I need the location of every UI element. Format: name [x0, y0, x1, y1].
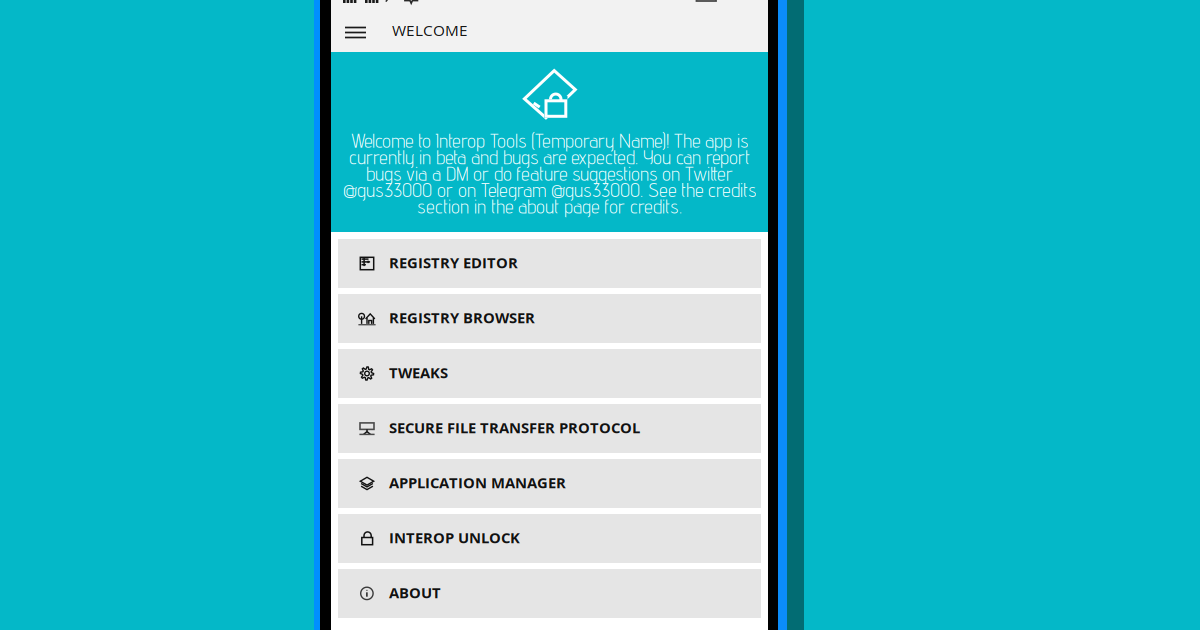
button[interactable]: ABOUT [338, 569, 761, 618]
staticText: WELCOME [392, 20, 468, 40]
staticText: APPLICATION MANAGER [389, 472, 566, 493]
staticText: INTEROP UNLOCK [389, 527, 520, 548]
staticText: ABOUT [389, 582, 441, 603]
staticText: Welcome to Interop Tools (Temporary Name… [343, 129, 756, 218]
staticText: REGISTRY BROWSER [389, 307, 535, 328]
staticText: SECURE FILE TRANSFER PROTOCOL [389, 417, 640, 438]
button[interactable]: INTEROP UNLOCK [338, 514, 761, 563]
button[interactable]: Menu [331, 13, 392, 52]
button[interactable]: REGISTRY BROWSER [338, 294, 761, 343]
staticText: REGISTRY EDITOR [389, 252, 518, 273]
button[interactable]: TWEAKS [338, 349, 761, 398]
button[interactable]: APPLICATION MANAGER [338, 459, 761, 508]
button[interactable]: REGISTRY EDITOR [338, 239, 761, 288]
staticText: TWEAKS [389, 362, 448, 383]
button[interactable]: SECURE FILE TRANSFER PROTOCOL [338, 404, 761, 453]
